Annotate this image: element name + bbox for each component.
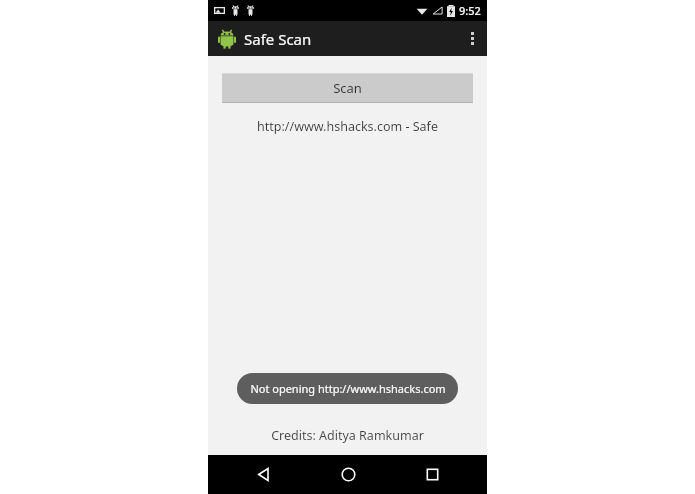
button[interactable]: Scan (222, 73, 473, 103)
staticText: Not opening http://www.hshacks.com (250, 381, 446, 396)
button[interactable]: Recent apps (402, 455, 462, 494)
staticText: Scan (333, 79, 362, 97)
button[interactable]: Not opening http://www.hshacks.com (237, 373, 458, 404)
staticText: 9:52 (459, 3, 481, 18)
staticText: Safe Scan (244, 29, 312, 49)
staticText: http://www.hshacks.com - Safe (257, 118, 438, 135)
button[interactable]: More options (457, 21, 487, 56)
staticText: Credits: Aditya Ramkumar (271, 427, 424, 444)
button[interactable]: Home (318, 455, 378, 494)
button[interactable]: Back (233, 455, 293, 494)
